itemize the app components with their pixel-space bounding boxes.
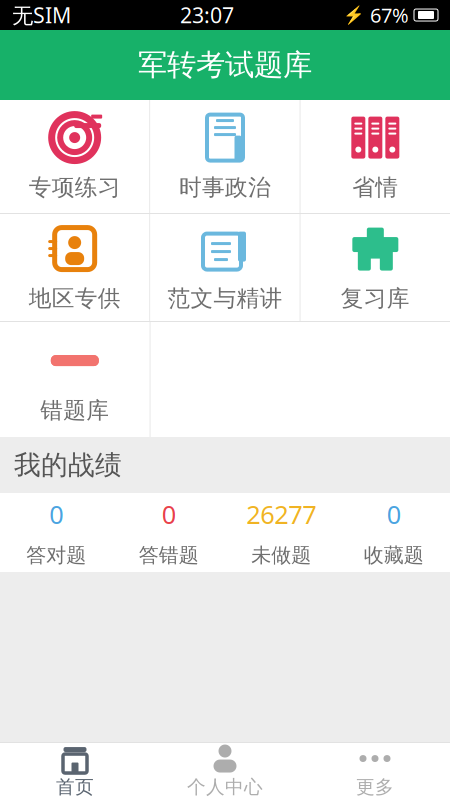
staticText: 0 xyxy=(387,497,401,531)
button[interactable]: 范文与精讲 xyxy=(150,214,300,321)
button[interactable]: 专项练习 xyxy=(0,100,149,213)
staticText: 时事政治 xyxy=(179,174,271,201)
staticText: 个人中心 xyxy=(187,775,263,798)
button[interactable]: 时事政治 xyxy=(150,100,300,213)
button[interactable]: 错题库 xyxy=(0,322,150,437)
staticText: 收藏题 xyxy=(364,543,424,568)
staticText: 23:07 xyxy=(180,1,234,29)
button[interactable]: 省情 xyxy=(301,100,450,213)
staticText: 专项练习 xyxy=(29,174,121,201)
staticText: 26277 xyxy=(246,497,316,531)
staticText: 省情 xyxy=(352,174,398,201)
button[interactable]: 复习库 xyxy=(301,214,450,321)
staticText: 首页 xyxy=(56,775,94,798)
staticText: 无SIM xyxy=(12,1,71,29)
staticText: 错题库 xyxy=(40,397,109,424)
staticText: 未做题 xyxy=(251,543,311,568)
staticText: ⚡ xyxy=(343,5,365,25)
staticText: 更多 xyxy=(356,775,394,798)
staticText: 答对题 xyxy=(26,543,86,568)
staticText: 军转考试题库 xyxy=(138,47,312,83)
staticText: 我的战绩 xyxy=(14,449,122,481)
button[interactable]: 地区专供 xyxy=(0,214,149,321)
button[interactable]: 个人中心 xyxy=(150,738,300,800)
button[interactable]: 更多 xyxy=(300,738,450,800)
staticText: 地区专供 xyxy=(29,285,121,312)
staticText: 67% xyxy=(370,2,409,28)
staticText: 复习库 xyxy=(341,285,410,312)
button[interactable]: 首页 xyxy=(0,738,150,800)
staticText: 0 xyxy=(162,497,176,531)
staticText: 范文与精讲 xyxy=(167,285,282,312)
staticText: 答错题 xyxy=(139,543,199,568)
staticText: 0 xyxy=(49,497,63,531)
